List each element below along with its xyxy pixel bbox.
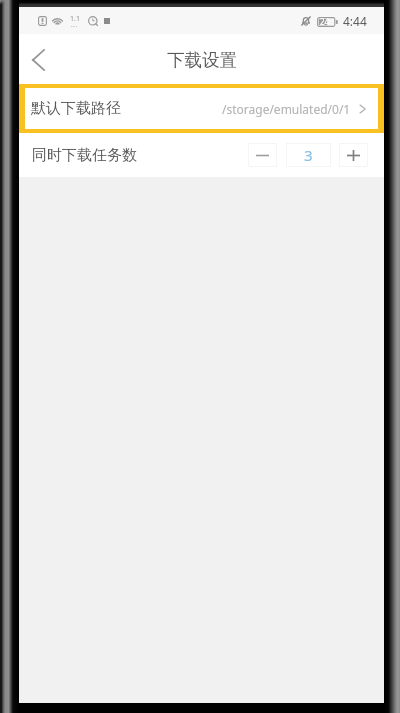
button[interactable]: 默认下载路径	[25, 88, 378, 129]
button[interactable]: Back	[16, 38, 60, 82]
staticText: /storage/emulated/0/1	[222, 101, 351, 117]
staticText: 24	[320, 16, 330, 27]
staticText: 下载设置	[167, 49, 237, 71]
staticText: 4:44	[343, 13, 367, 29]
button[interactable]: Decrease	[248, 143, 277, 167]
staticText: 1.1	[70, 14, 80, 24]
staticText: 同时下载任务数	[32, 146, 137, 165]
staticText: 3	[304, 145, 313, 165]
staticText: K/s	[71, 24, 80, 27]
staticText: 默认下载路径	[31, 99, 121, 118]
button[interactable]: Increase	[339, 143, 368, 167]
